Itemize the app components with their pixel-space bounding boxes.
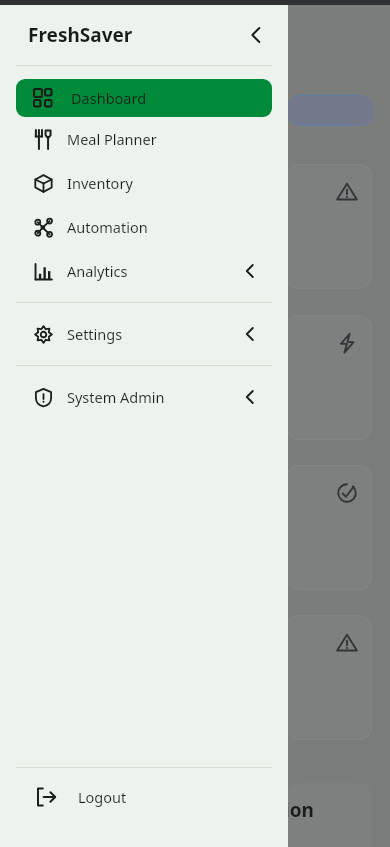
staticText: Inventory: [67, 173, 133, 193]
button[interactable]: Meal Planner: [0, 117, 288, 161]
staticText: Meal Planner: [67, 129, 157, 149]
staticText: ion: [286, 797, 314, 823]
button[interactable]: [286, 615, 372, 740]
staticText: System Admin: [67, 387, 165, 407]
button[interactable]: ion: [286, 783, 372, 847]
button[interactable]: [286, 164, 372, 289]
button[interactable]: Settings: [0, 312, 288, 356]
staticText: Analytics: [67, 261, 128, 281]
button[interactable]: System Admin: [0, 375, 288, 419]
button[interactable]: Collapse drawer: [236, 17, 272, 53]
staticText: Automation: [67, 217, 148, 237]
button[interactable]: Expand Settings: [236, 322, 260, 346]
button[interactable]: Dashboard: [16, 79, 272, 117]
button[interactable]: Logout: [0, 768, 288, 826]
staticText: Settings: [67, 324, 123, 344]
button[interactable]: Inventory: [0, 161, 288, 205]
button[interactable]: Analytics: [0, 249, 288, 293]
button[interactable]: [286, 315, 372, 440]
button[interactable]: Expand System Admin: [236, 385, 260, 409]
button[interactable]: Expand Analytics: [236, 259, 260, 283]
staticText: Logout: [78, 787, 127, 807]
staticText: FreshSaver: [28, 22, 133, 48]
button[interactable]: [286, 95, 374, 126]
button[interactable]: Automation: [0, 205, 288, 249]
button[interactable]: [286, 465, 372, 590]
staticText: Dashboard: [71, 88, 147, 108]
